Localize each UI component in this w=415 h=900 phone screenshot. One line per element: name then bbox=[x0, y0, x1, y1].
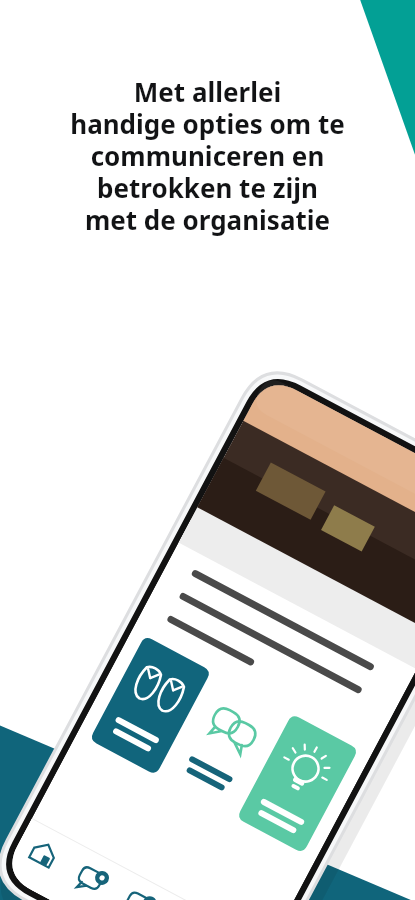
staticText: Met allerlei handige opties om te commun… bbox=[70, 74, 345, 238]
